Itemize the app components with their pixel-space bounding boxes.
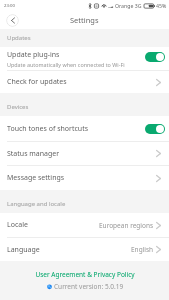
staticText: Updates: [7, 34, 31, 42]
staticText: Update plug-ins: [7, 50, 60, 60]
staticText: Check for updates: [7, 77, 67, 87]
button[interactable]: Check for updates: [0, 71, 169, 93]
staticText: 45%: [156, 2, 167, 9]
button[interactable]: Toggle: [145, 124, 165, 134]
staticText: 23:00: [4, 2, 15, 8]
staticText: Message settings: [7, 173, 65, 183]
staticText: English: [131, 245, 154, 254]
staticText: Language and locale: [7, 200, 66, 208]
button[interactable]: Status manager: [0, 142, 169, 165]
staticText: Devices: [7, 103, 29, 111]
staticText: Status manager: [7, 149, 60, 159]
staticText: Touch tones of shortcuts: [7, 124, 89, 134]
staticText: Locale: [7, 220, 28, 230]
staticText: Current version: 5.0.19: [54, 282, 124, 291]
button[interactable]: Update plug-ins: [0, 47, 169, 70]
staticText: Language: [7, 245, 40, 255]
staticText: Orange 3G: [115, 2, 142, 9]
button[interactable]: Locale: [0, 213, 169, 237]
button[interactable]: Language: [0, 238, 169, 261]
button[interactable]: Back: [6, 14, 19, 27]
button[interactable]: Toggle: [145, 52, 165, 62]
staticText: Update automatically when connected to W…: [7, 61, 125, 68]
button[interactable]: Message settings: [0, 166, 169, 190]
staticText: Settings: [70, 15, 99, 25]
staticText: European regions: [99, 221, 154, 230]
button[interactable]: Touch tones of shortcuts: [0, 116, 169, 141]
button[interactable]: User Agreement & Privacy Policy: [35, 270, 135, 279]
